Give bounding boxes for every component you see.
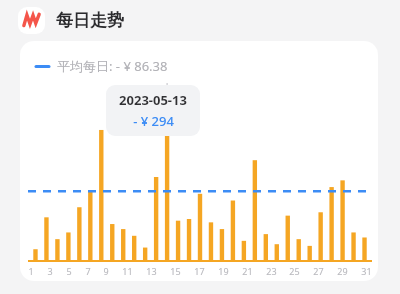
staticText: 3 <box>47 265 53 277</box>
staticText: 9 <box>103 265 109 277</box>
staticText: 21 <box>242 265 253 277</box>
staticText: 13 <box>146 265 157 277</box>
staticText: 29 <box>337 265 348 277</box>
staticText: - ¥ 294 <box>133 112 174 130</box>
staticText: 每日走势 <box>56 10 124 31</box>
staticText: 31 <box>361 265 372 277</box>
staticText: 11 <box>122 265 133 277</box>
staticText: 15 <box>170 265 181 277</box>
other: App icon <box>18 7 45 34</box>
staticText: 23 <box>266 265 277 277</box>
staticText: 17 <box>194 265 205 277</box>
staticText: 平均每日: - ¥ 86.38 <box>57 57 168 75</box>
staticText: 2023-05-13 <box>119 91 187 109</box>
staticText: 5 <box>66 265 72 277</box>
button[interactable]: 平均每日: - ¥ 86.38 <box>20 41 378 281</box>
staticText: 27 <box>313 265 324 277</box>
staticText: 7 <box>85 265 91 277</box>
staticText: 1 <box>28 265 34 277</box>
staticText: 25 <box>289 265 300 277</box>
button[interactable]: App icon <box>18 7 400 34</box>
staticText: 19 <box>218 265 229 277</box>
button[interactable]: 2023-05-13 <box>119 91 187 130</box>
